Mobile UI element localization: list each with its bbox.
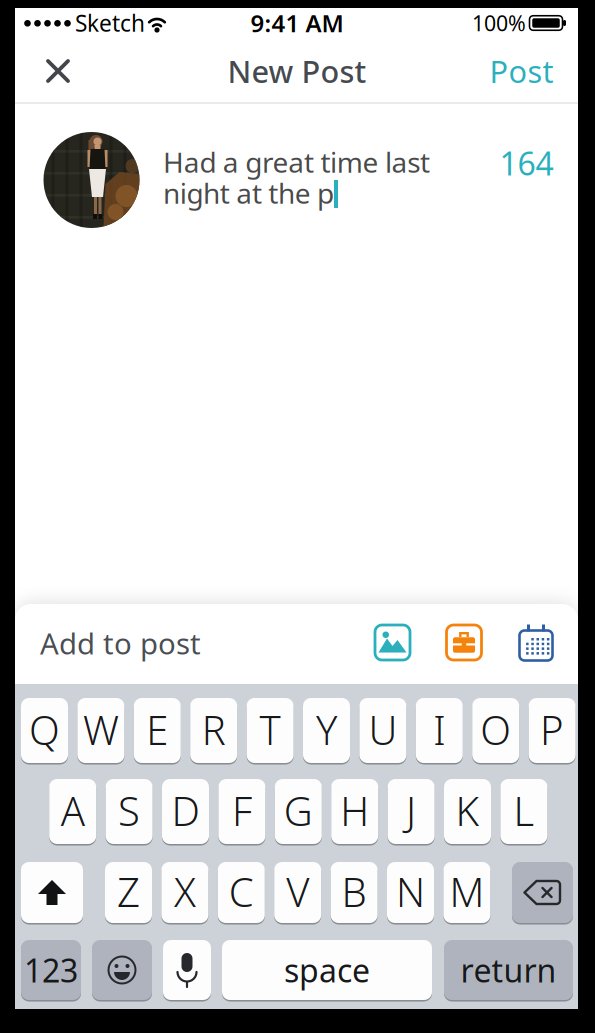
button[interactable]: O xyxy=(472,697,519,764)
button[interactable] xyxy=(163,939,211,1001)
staticText: X xyxy=(174,865,196,918)
staticText: A xyxy=(61,784,85,837)
button[interactable]: D xyxy=(162,778,209,845)
staticText: Q xyxy=(29,703,60,756)
staticText: M xyxy=(449,865,484,918)
button[interactable]: J xyxy=(388,778,435,845)
button[interactable] xyxy=(374,624,411,661)
button[interactable]: T xyxy=(247,697,294,764)
button[interactable] xyxy=(517,624,554,661)
button[interactable]: W xyxy=(77,697,124,764)
button[interactable] xyxy=(512,861,573,924)
staticText: H xyxy=(340,784,369,837)
staticText: P xyxy=(540,703,564,756)
staticText: W xyxy=(83,703,119,756)
button[interactable]: Y xyxy=(303,697,350,764)
button[interactable]: Q xyxy=(21,697,68,764)
staticText: Post xyxy=(489,51,553,91)
staticText: night at the p xyxy=(163,174,334,212)
button[interactable]: X xyxy=(161,861,208,924)
staticText: V xyxy=(286,865,309,918)
staticText: U xyxy=(368,703,397,756)
button[interactable]: H xyxy=(331,778,378,845)
button[interactable] xyxy=(92,939,152,1001)
button[interactable]: V xyxy=(274,861,321,924)
staticText: 164 xyxy=(499,142,553,184)
button[interactable] xyxy=(21,861,83,924)
staticText: O xyxy=(480,703,511,756)
staticText: R xyxy=(202,703,226,756)
staticText: I xyxy=(433,703,445,756)
button[interactable]: Z xyxy=(105,861,152,924)
button[interactable] xyxy=(34,47,82,95)
button[interactable]: S xyxy=(106,778,153,845)
staticText: Y xyxy=(316,703,337,756)
staticText: 100% xyxy=(472,9,526,37)
staticText: D xyxy=(171,784,199,837)
button[interactable]: F xyxy=(218,778,265,845)
button[interactable]: R xyxy=(190,697,237,764)
button[interactable] xyxy=(445,624,482,661)
button[interactable]: M xyxy=(443,861,490,924)
staticText: E xyxy=(146,703,168,756)
button[interactable]: return xyxy=(444,939,573,1001)
button[interactable]: Post xyxy=(463,51,553,91)
button[interactable]: P xyxy=(529,697,576,764)
staticText: L xyxy=(513,784,534,837)
staticText: 9:41 AM xyxy=(250,7,343,39)
staticText: S xyxy=(118,784,140,837)
staticText: Add to post xyxy=(40,623,201,662)
button[interactable]: B xyxy=(331,861,378,924)
button[interactable]: C xyxy=(218,861,265,924)
button[interactable]: U xyxy=(359,697,406,764)
staticText: Z xyxy=(117,865,140,918)
staticText: Had a great time last xyxy=(163,143,430,181)
staticText: B xyxy=(342,865,367,918)
button[interactable]: 123 xyxy=(21,939,81,1001)
staticText: C xyxy=(229,865,254,918)
staticText: Sketch xyxy=(75,8,145,38)
button[interactable]: E xyxy=(134,697,181,764)
button[interactable]: L xyxy=(500,778,547,845)
staticText: space xyxy=(284,949,370,991)
button[interactable]: A xyxy=(49,778,96,845)
staticText: K xyxy=(455,784,479,837)
staticText: return xyxy=(460,949,556,991)
staticText: N xyxy=(396,865,425,918)
staticText: F xyxy=(232,784,252,837)
staticText: 123 xyxy=(24,949,78,991)
button[interactable]: space xyxy=(222,939,432,1001)
button[interactable]: K xyxy=(444,778,491,845)
staticText: G xyxy=(284,784,313,837)
button[interactable]: N xyxy=(387,861,434,924)
staticText: New Post xyxy=(227,51,366,91)
button[interactable]: I xyxy=(416,697,463,764)
button[interactable]: G xyxy=(275,778,322,845)
staticText: J xyxy=(406,784,416,837)
staticText: T xyxy=(260,703,281,756)
